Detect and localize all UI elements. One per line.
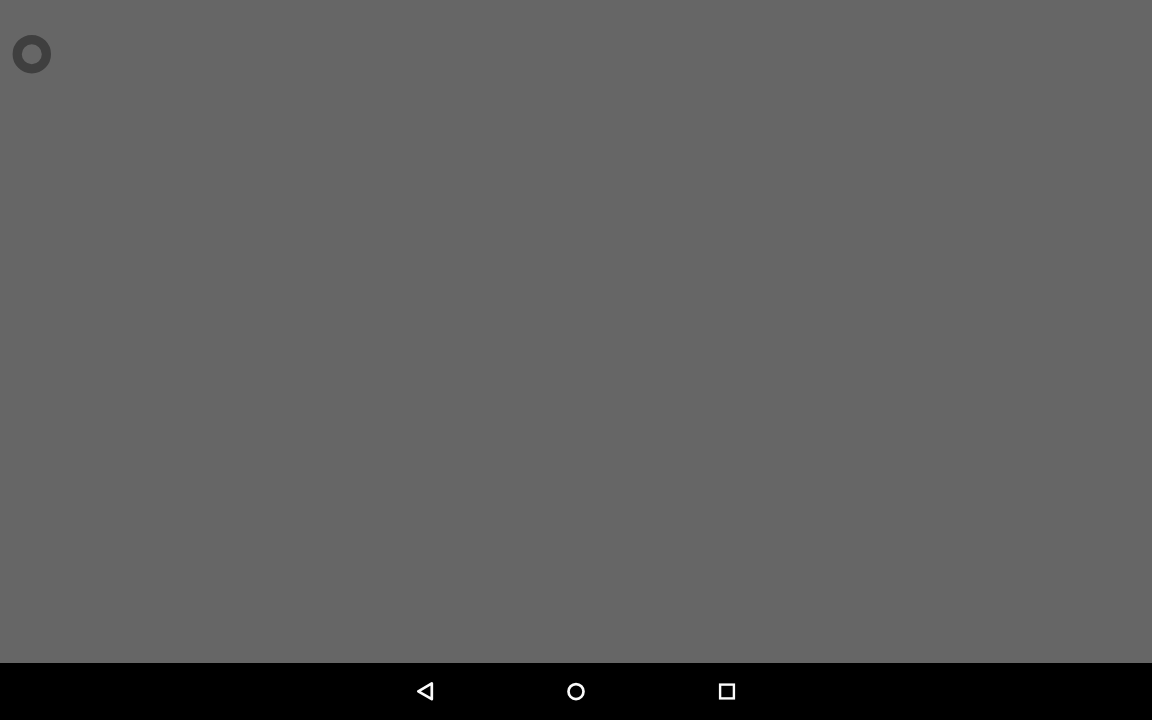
button[interactable]: Home: [546, 663, 606, 720]
button[interactable]: Back: [395, 663, 455, 720]
other: Loading: [12, 34, 52, 74]
button[interactable]: Recents: [697, 663, 757, 720]
